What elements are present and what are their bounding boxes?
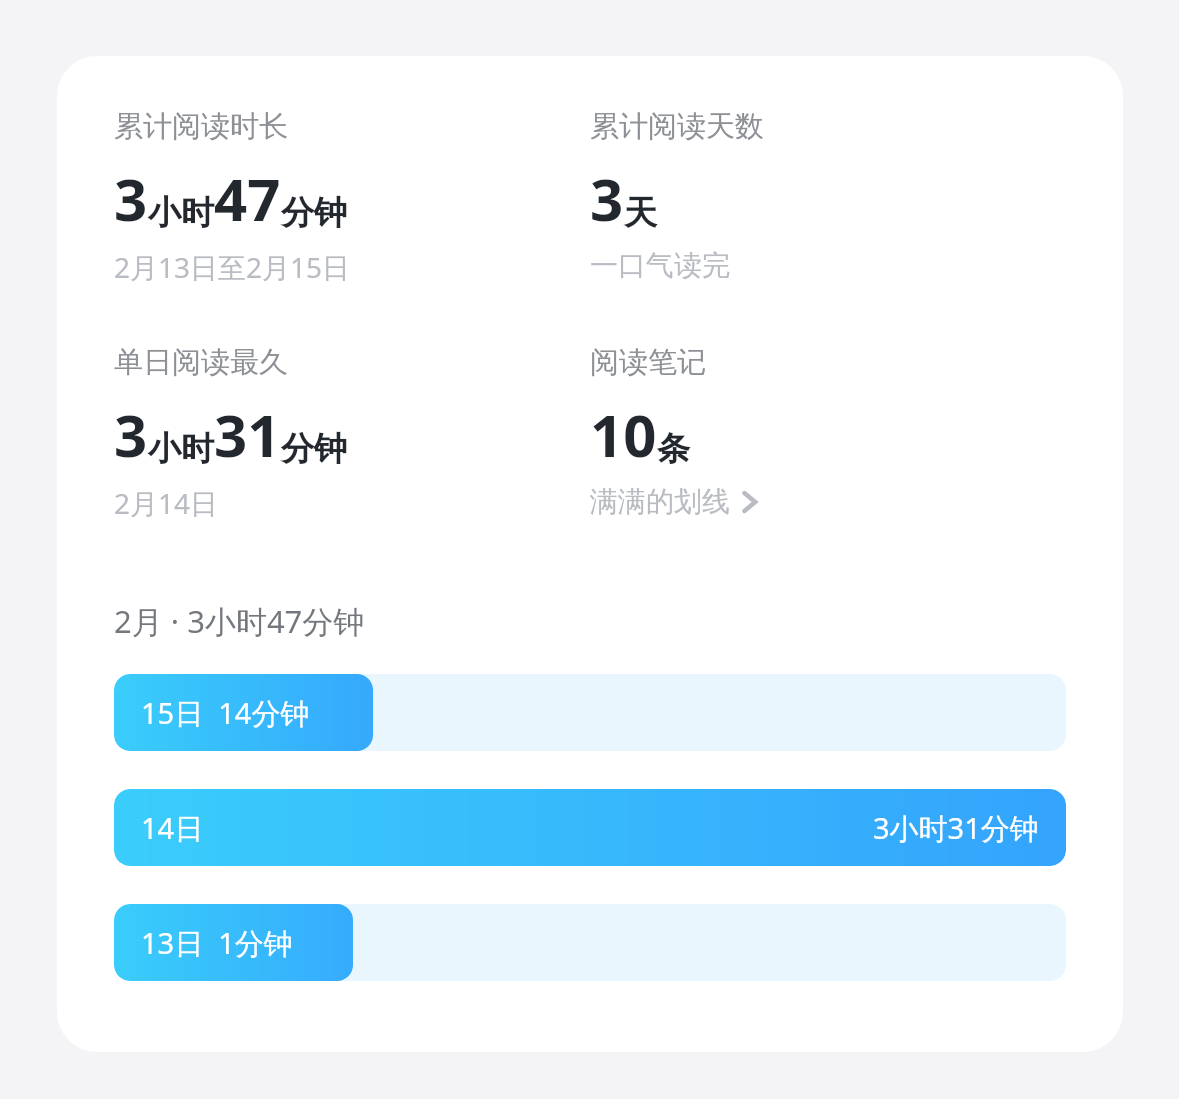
staticText: 3小时31分钟 xyxy=(873,808,1039,848)
staticText: 2月14日 xyxy=(114,484,219,522)
staticText: 条 xyxy=(657,428,690,470)
staticText: 天 xyxy=(624,192,657,234)
button[interactable]: 13日 1分钟 xyxy=(114,904,1066,981)
button[interactable]: 15日 14分钟 xyxy=(114,674,1066,751)
staticText: 3 xyxy=(590,159,624,238)
staticText: 阅读笔记 xyxy=(590,344,706,381)
staticText: 单日阅读最久 xyxy=(114,344,288,381)
staticText: 分钟 xyxy=(281,192,347,234)
staticText: 2月 · 3小时47分钟 xyxy=(114,600,365,642)
button[interactable]: 14日 xyxy=(114,789,1066,866)
staticText: 3 xyxy=(114,159,148,238)
staticText: 3 xyxy=(114,395,148,474)
staticText: 15日 14分钟 xyxy=(141,693,310,733)
staticText: 2月13日至2月15日 xyxy=(114,248,351,286)
staticText: 一口气读完 xyxy=(590,248,730,283)
staticText: 分钟 xyxy=(281,428,347,470)
staticText: 14日 xyxy=(141,808,204,848)
staticText: 小时 xyxy=(148,428,214,470)
staticText: 累计阅读天数 xyxy=(590,108,764,145)
button[interactable]: 查看划线 xyxy=(740,488,760,516)
staticText: 满满的划线 xyxy=(590,484,730,519)
staticText: 累计阅读时长 xyxy=(114,108,288,145)
staticText: 10 xyxy=(590,395,657,474)
staticText: 小时 xyxy=(148,192,214,234)
staticText: 47 xyxy=(214,159,281,238)
staticText: 31 xyxy=(214,395,281,474)
staticText: 13日 1分钟 xyxy=(141,923,293,963)
